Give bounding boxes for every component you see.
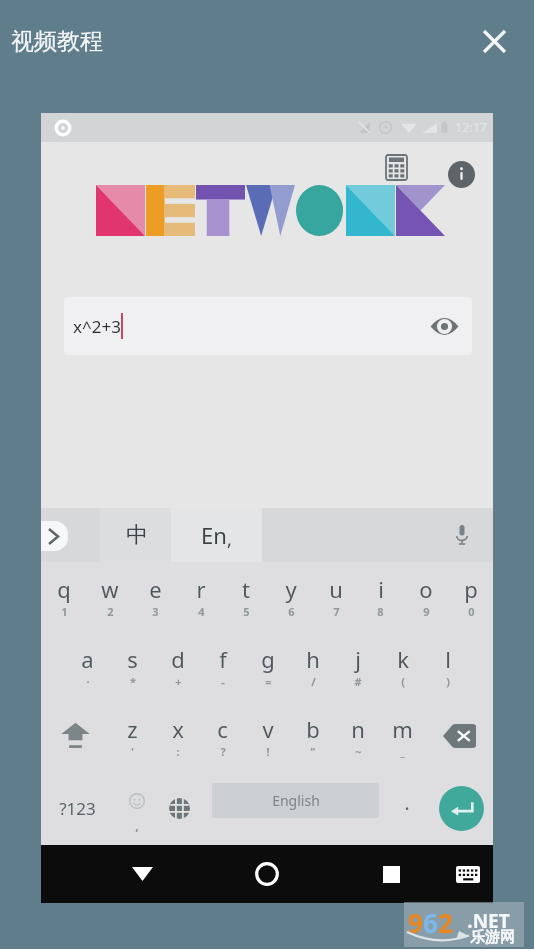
staticText: k xyxy=(397,644,409,674)
button[interactable]: w xyxy=(87,562,133,631)
button[interactable]: h xyxy=(290,631,335,701)
button[interactable]: En xyxy=(171,508,262,562)
button[interactable]: Backspace xyxy=(425,701,493,771)
staticText: " xyxy=(310,744,316,759)
staticText: · xyxy=(86,674,90,689)
staticText: . xyxy=(404,790,410,816)
button[interactable]: f xyxy=(200,631,245,701)
button[interactable]: i xyxy=(358,562,403,631)
button[interactable]: ?123 xyxy=(41,771,114,845)
staticText: + xyxy=(175,674,182,689)
staticText: , xyxy=(135,816,139,834)
staticText: t xyxy=(242,574,250,604)
button[interactable]: e xyxy=(133,562,178,631)
staticText: = xyxy=(265,674,272,689)
staticText: 6 xyxy=(423,905,438,940)
staticText: 9 xyxy=(408,905,423,940)
button[interactable]: k xyxy=(380,631,425,701)
staticText: n xyxy=(351,714,365,744)
staticText: s xyxy=(127,644,138,674)
staticText: 9 xyxy=(423,604,430,619)
staticText: 7 xyxy=(333,604,340,619)
button[interactable]: Expand toolbar xyxy=(41,521,68,551)
button[interactable]: Emoji xyxy=(114,771,159,845)
staticText: 2 xyxy=(438,905,453,940)
staticText: En xyxy=(201,520,227,550)
button[interactable]: b xyxy=(290,701,335,771)
button[interactable]: Show result xyxy=(428,310,460,342)
button[interactable]: r xyxy=(178,562,223,631)
staticText: _ xyxy=(400,744,405,759)
button[interactable]: y xyxy=(268,562,313,631)
staticText: v xyxy=(262,714,274,744)
button[interactable]: Home xyxy=(237,845,297,903)
staticText: c xyxy=(217,714,228,744)
staticText: ? xyxy=(220,744,226,759)
staticText: ?123 xyxy=(59,797,96,820)
button[interactable]: c xyxy=(200,701,245,771)
staticText: ! xyxy=(266,744,270,759)
staticText: u xyxy=(329,574,343,604)
staticText: h xyxy=(306,644,320,674)
button[interactable]: d xyxy=(155,631,200,701)
staticText: ' xyxy=(131,744,134,759)
button[interactable]: Switch language xyxy=(155,771,203,845)
button[interactable]: x xyxy=(155,701,200,771)
staticText: p xyxy=(464,574,478,604)
button[interactable]: m xyxy=(380,701,425,771)
button[interactable]: Back xyxy=(112,845,172,903)
button[interactable]: Close xyxy=(466,13,522,69)
button[interactable]: Keyboard xyxy=(441,845,495,903)
button[interactable]: v xyxy=(245,701,290,771)
button[interactable]: x^2+3 xyxy=(64,297,472,355)
button[interactable]: Enter xyxy=(429,771,493,845)
staticText: ~ xyxy=(355,744,362,759)
staticText: w xyxy=(101,574,119,604)
staticText: 1 xyxy=(61,604,68,619)
staticText: x^2+3 xyxy=(73,315,121,338)
button[interactable]: Voice input xyxy=(431,508,493,562)
staticText: 4 xyxy=(198,604,205,619)
button[interactable]: g xyxy=(245,631,290,701)
button[interactable]: s xyxy=(110,631,155,701)
button[interactable]: u xyxy=(313,562,358,631)
staticText: 8 xyxy=(377,604,384,619)
staticText: m xyxy=(392,714,413,744)
staticText: o xyxy=(419,574,433,604)
button[interactable]: a xyxy=(65,631,110,701)
button[interactable]: t xyxy=(223,562,268,631)
staticText: - xyxy=(221,674,225,689)
button[interactable]: q xyxy=(41,562,87,631)
button[interactable]: l xyxy=(425,631,470,701)
button[interactable]: Recents xyxy=(361,845,421,903)
button[interactable]: . xyxy=(387,771,427,845)
staticText: a xyxy=(81,644,94,674)
staticText: g xyxy=(261,644,275,674)
button[interactable]: Info xyxy=(444,157,478,191)
staticText: q xyxy=(57,574,71,604)
button[interactable]: o xyxy=(403,562,448,631)
button[interactable]: 中 xyxy=(100,508,173,562)
staticText: f xyxy=(219,644,227,674)
button[interactable]: Shift xyxy=(41,701,110,771)
button[interactable]: z xyxy=(110,701,155,771)
staticText: z xyxy=(127,714,138,744)
staticText: 中 xyxy=(126,521,148,549)
staticText: 5 xyxy=(243,604,250,619)
staticText: 乐游网 xyxy=(470,928,515,947)
staticText: d xyxy=(171,644,185,674)
staticText: e xyxy=(149,574,162,604)
button[interactable]: p xyxy=(448,562,493,631)
staticText: .NET xyxy=(467,908,510,934)
button[interactable]: English xyxy=(212,783,379,818)
staticText: l xyxy=(445,644,451,674)
staticText: i xyxy=(378,574,384,604)
staticText: # xyxy=(354,674,362,689)
button[interactable]: j xyxy=(335,631,380,701)
staticText: y xyxy=(285,574,297,604)
button[interactable]: n xyxy=(335,701,380,771)
staticText: ) xyxy=(446,674,450,689)
button[interactable]: Calculator xyxy=(379,150,413,184)
staticText: , xyxy=(227,527,232,552)
staticText: ( xyxy=(401,674,405,689)
